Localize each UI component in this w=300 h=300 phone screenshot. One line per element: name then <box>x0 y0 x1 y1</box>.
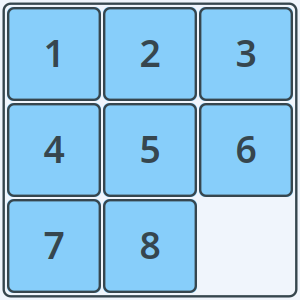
button[interactable]: Tile 5 <box>103 103 197 197</box>
staticText: 3 <box>235 28 256 77</box>
button[interactable]: Tile 2 <box>103 7 197 101</box>
staticText: 1 <box>43 28 64 77</box>
staticText: 5 <box>139 124 160 173</box>
staticText: 7 <box>43 220 64 269</box>
staticText: 6 <box>235 124 256 173</box>
staticText: 8 <box>139 220 160 269</box>
button[interactable]: Tile 6 <box>199 103 293 197</box>
button[interactable]: Tile 4 <box>7 103 101 197</box>
button[interactable]: Tile 7 <box>7 199 101 293</box>
button[interactable]: Tile 8 <box>103 199 197 293</box>
button[interactable]: Tile 1 <box>7 7 101 101</box>
staticText: 4 <box>43 124 64 173</box>
staticText: 2 <box>139 28 160 77</box>
button[interactable]: Tile 3 <box>199 7 293 101</box>
